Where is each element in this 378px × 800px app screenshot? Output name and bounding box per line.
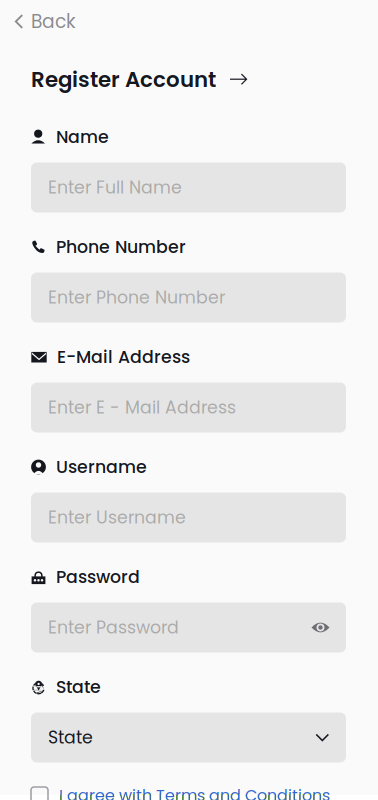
staticText: Enter Password [48,615,179,640]
button[interactable]: Enter E - Mail Address [0,382,378,432]
staticText: E-Mail Address [57,345,190,369]
button[interactable]: Enter Password [0,602,378,652]
button[interactable]: Enter Full Name [0,162,378,212]
staticText: State [48,725,93,750]
staticText: Register Account [31,65,216,94]
staticText: Enter Phone Number [48,285,225,310]
button[interactable]: State [0,712,378,762]
staticText: Name [56,125,109,149]
staticText: State [56,675,101,699]
button[interactable]: Enter Username [0,492,378,542]
staticText: Back [31,8,76,34]
staticText: Username [56,455,147,479]
button[interactable]: Back [0,0,378,36]
staticText: I agree with Terms and Conditions [59,784,330,800]
button[interactable]: Enter Phone Number [0,272,378,322]
button[interactable]: I agree with Terms and Conditions [0,785,378,800]
staticText: Enter Username [48,505,186,530]
staticText: Password [56,565,140,589]
staticText: Phone Number [56,235,186,259]
staticText: Enter Full Name [48,175,182,200]
staticText: Enter E - Mail Address [48,395,236,420]
